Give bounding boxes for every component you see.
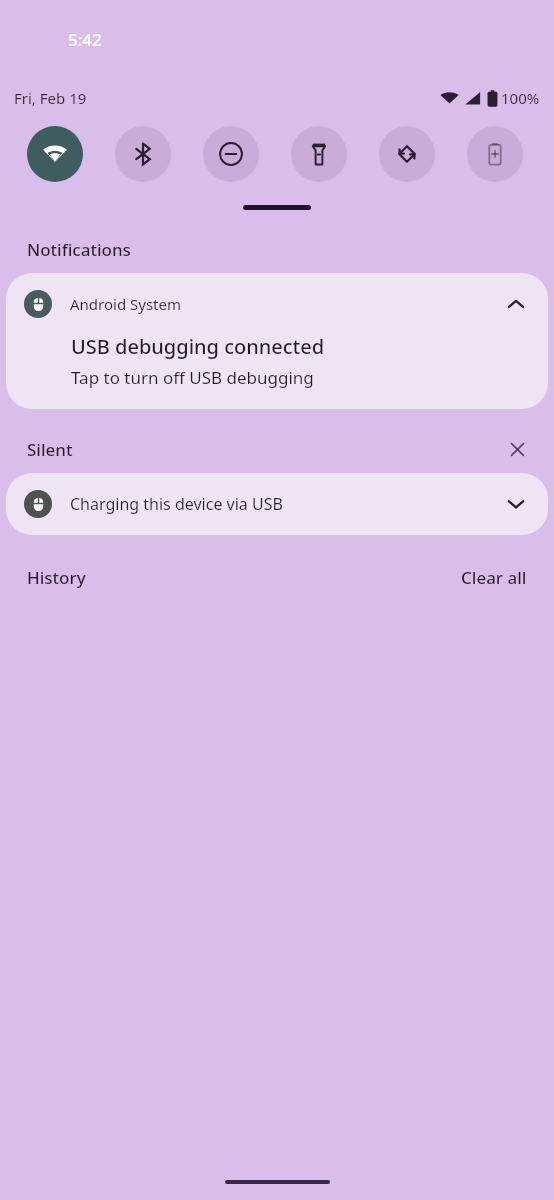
button[interactable]: Collapse notification <box>498 287 534 321</box>
button[interactable]: Do Not Disturb <box>203 126 259 182</box>
staticText: Clear all <box>461 566 527 589</box>
staticText: Silent <box>27 438 73 461</box>
button[interactable]: Charging this device via USB <box>6 473 548 535</box>
staticText: 5:42 <box>68 28 102 51</box>
staticText: Tap to turn off USB debugging <box>71 366 314 389</box>
button[interactable]: Clear silent notifications <box>502 434 532 464</box>
button[interactable]: Expand quick settings <box>243 205 311 210</box>
staticText: Fri, Feb 19 <box>14 88 87 108</box>
button[interactable]: Expand notification <box>498 486 534 522</box>
button[interactable]: Bluetooth <box>115 126 171 182</box>
button[interactable]: Clear all <box>448 560 540 595</box>
staticText: Notifications <box>27 238 131 261</box>
button[interactable]: Android System <box>6 273 548 409</box>
button[interactable]: Battery Saver <box>467 126 523 182</box>
staticText: History <box>27 566 86 589</box>
staticText: Android System <box>70 294 182 314</box>
button[interactable]: History <box>14 560 99 595</box>
staticText: 100% <box>501 88 540 108</box>
button[interactable]: Auto rotate <box>379 126 435 182</box>
button[interactable]: Internet <box>27 126 83 182</box>
staticText: Charging this device via USB <box>70 493 283 515</box>
staticText: USB debugging connected <box>71 333 325 360</box>
button[interactable]: Flashlight <box>291 126 347 182</box>
